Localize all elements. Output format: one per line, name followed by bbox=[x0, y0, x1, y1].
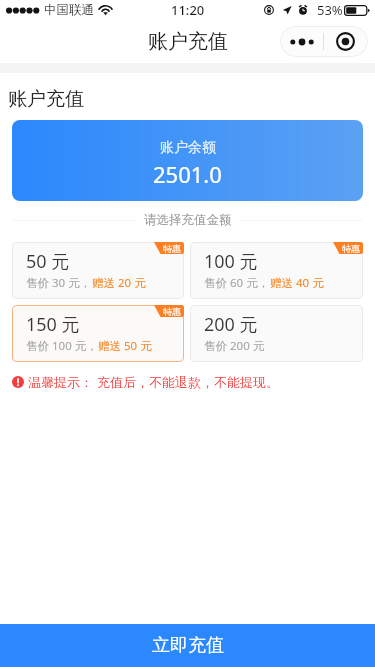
staticText: 温馨提示： bbox=[28, 374, 93, 390]
staticText: 账户充值 bbox=[8, 87, 84, 111]
staticText: 充值后，不能退款，不能提现。 bbox=[97, 374, 279, 390]
button[interactable]: 立即充值 bbox=[0, 624, 375, 667]
staticText: 赠送 50 元 bbox=[98, 338, 152, 354]
staticText: 特惠 bbox=[163, 243, 181, 254]
staticText: 200 元 bbox=[204, 312, 258, 337]
button[interactable]: 50 元 bbox=[12, 242, 184, 299]
button[interactable]: Close mini program bbox=[324, 26, 367, 57]
staticText: 请选择充值金额 bbox=[144, 212, 232, 228]
staticText: 售价 100 元， bbox=[26, 338, 98, 354]
staticText: 立即充值 bbox=[152, 634, 224, 657]
staticText: 中国联通 bbox=[44, 2, 94, 18]
staticText: 2501.0 bbox=[153, 159, 222, 189]
staticText: 赠送 20 元 bbox=[92, 275, 146, 291]
button[interactable]: 200 元 bbox=[190, 305, 363, 362]
staticText: 100 元 bbox=[204, 249, 258, 274]
button[interactable]: 100 元 bbox=[190, 242, 363, 299]
staticText: 账户充值 bbox=[148, 29, 228, 54]
button[interactable]: More options bbox=[280, 26, 323, 57]
button[interactable]: 150 元 bbox=[12, 305, 184, 362]
staticText: 53% bbox=[317, 1, 343, 19]
staticText: 赠送 40 元 bbox=[270, 275, 324, 291]
button[interactable]: 账户余额 bbox=[12, 120, 363, 201]
staticText: 特惠 bbox=[342, 243, 360, 254]
staticText: 特惠 bbox=[163, 306, 181, 317]
staticText: 50 元 bbox=[26, 249, 70, 274]
staticText: 11:20 bbox=[171, 1, 205, 19]
staticText: 售价 60 元， bbox=[204, 275, 270, 291]
staticText: 账户余额 bbox=[160, 139, 216, 157]
staticText: 150 元 bbox=[26, 312, 80, 337]
staticText: 售价 200 元 bbox=[204, 338, 265, 354]
staticText: 售价 30 元， bbox=[26, 275, 92, 291]
